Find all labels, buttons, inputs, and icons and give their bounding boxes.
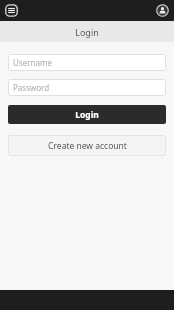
button[interactable]: Menu: [4, 3, 19, 18]
button[interactable]: Login: [8, 105, 166, 124]
staticText: Login: [75, 26, 99, 38]
staticText: Create new account: [48, 140, 127, 152]
button[interactable]: Password: [8, 79, 166, 96]
staticText: Username: [13, 57, 52, 68]
staticText: Password: [13, 82, 50, 93]
button[interactable]: Account: [155, 3, 170, 18]
button[interactable]: Username: [8, 54, 166, 71]
button[interactable]: Create new account: [8, 135, 166, 156]
staticText: Login: [75, 109, 99, 121]
